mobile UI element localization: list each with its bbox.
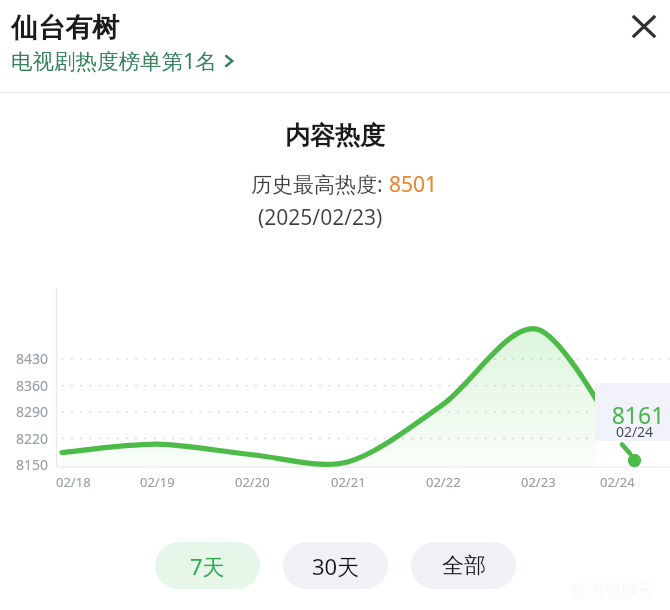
button[interactable]: 全部 <box>411 542 516 589</box>
staticText: 8360 <box>16 376 49 395</box>
staticText: 02/19 <box>140 473 175 491</box>
staticText: 7天 <box>190 551 225 581</box>
staticText: 电视剧热度榜单第1名 <box>11 46 217 75</box>
staticText: 02/22 <box>426 473 461 491</box>
staticText: 8290 <box>16 402 49 421</box>
staticText: 02/20 <box>235 473 270 491</box>
staticText: (2025/02/23) <box>258 203 383 232</box>
staticText: 8150 <box>16 455 49 474</box>
staticText: 内容热度 <box>285 120 385 151</box>
staticText: 02/24 <box>603 422 666 441</box>
button[interactable]: 30天 <box>283 542 388 589</box>
button[interactable]: 7天 <box>155 542 260 589</box>
staticText: 8161 <box>604 399 670 430</box>
staticText: 02/18 <box>56 473 91 491</box>
staticText: 02/24 <box>600 473 635 491</box>
staticText: 02/23 <box>521 473 556 491</box>
button[interactable]: 电视剧热度榜单第1名 <box>11 46 238 75</box>
button[interactable]: Close <box>624 6 664 46</box>
staticText: 仙台有树 <box>11 11 119 45</box>
staticText: : <box>377 170 389 199</box>
staticText: 8220 <box>16 429 49 448</box>
staticText: 全部 <box>442 552 486 580</box>
staticText: 历史最高热度 <box>251 172 377 198</box>
staticText: 8501 <box>389 170 438 199</box>
staticText: 02/21 <box>331 473 366 491</box>
staticText: 8430 <box>16 349 49 368</box>
staticText: 30天 <box>312 551 360 581</box>
